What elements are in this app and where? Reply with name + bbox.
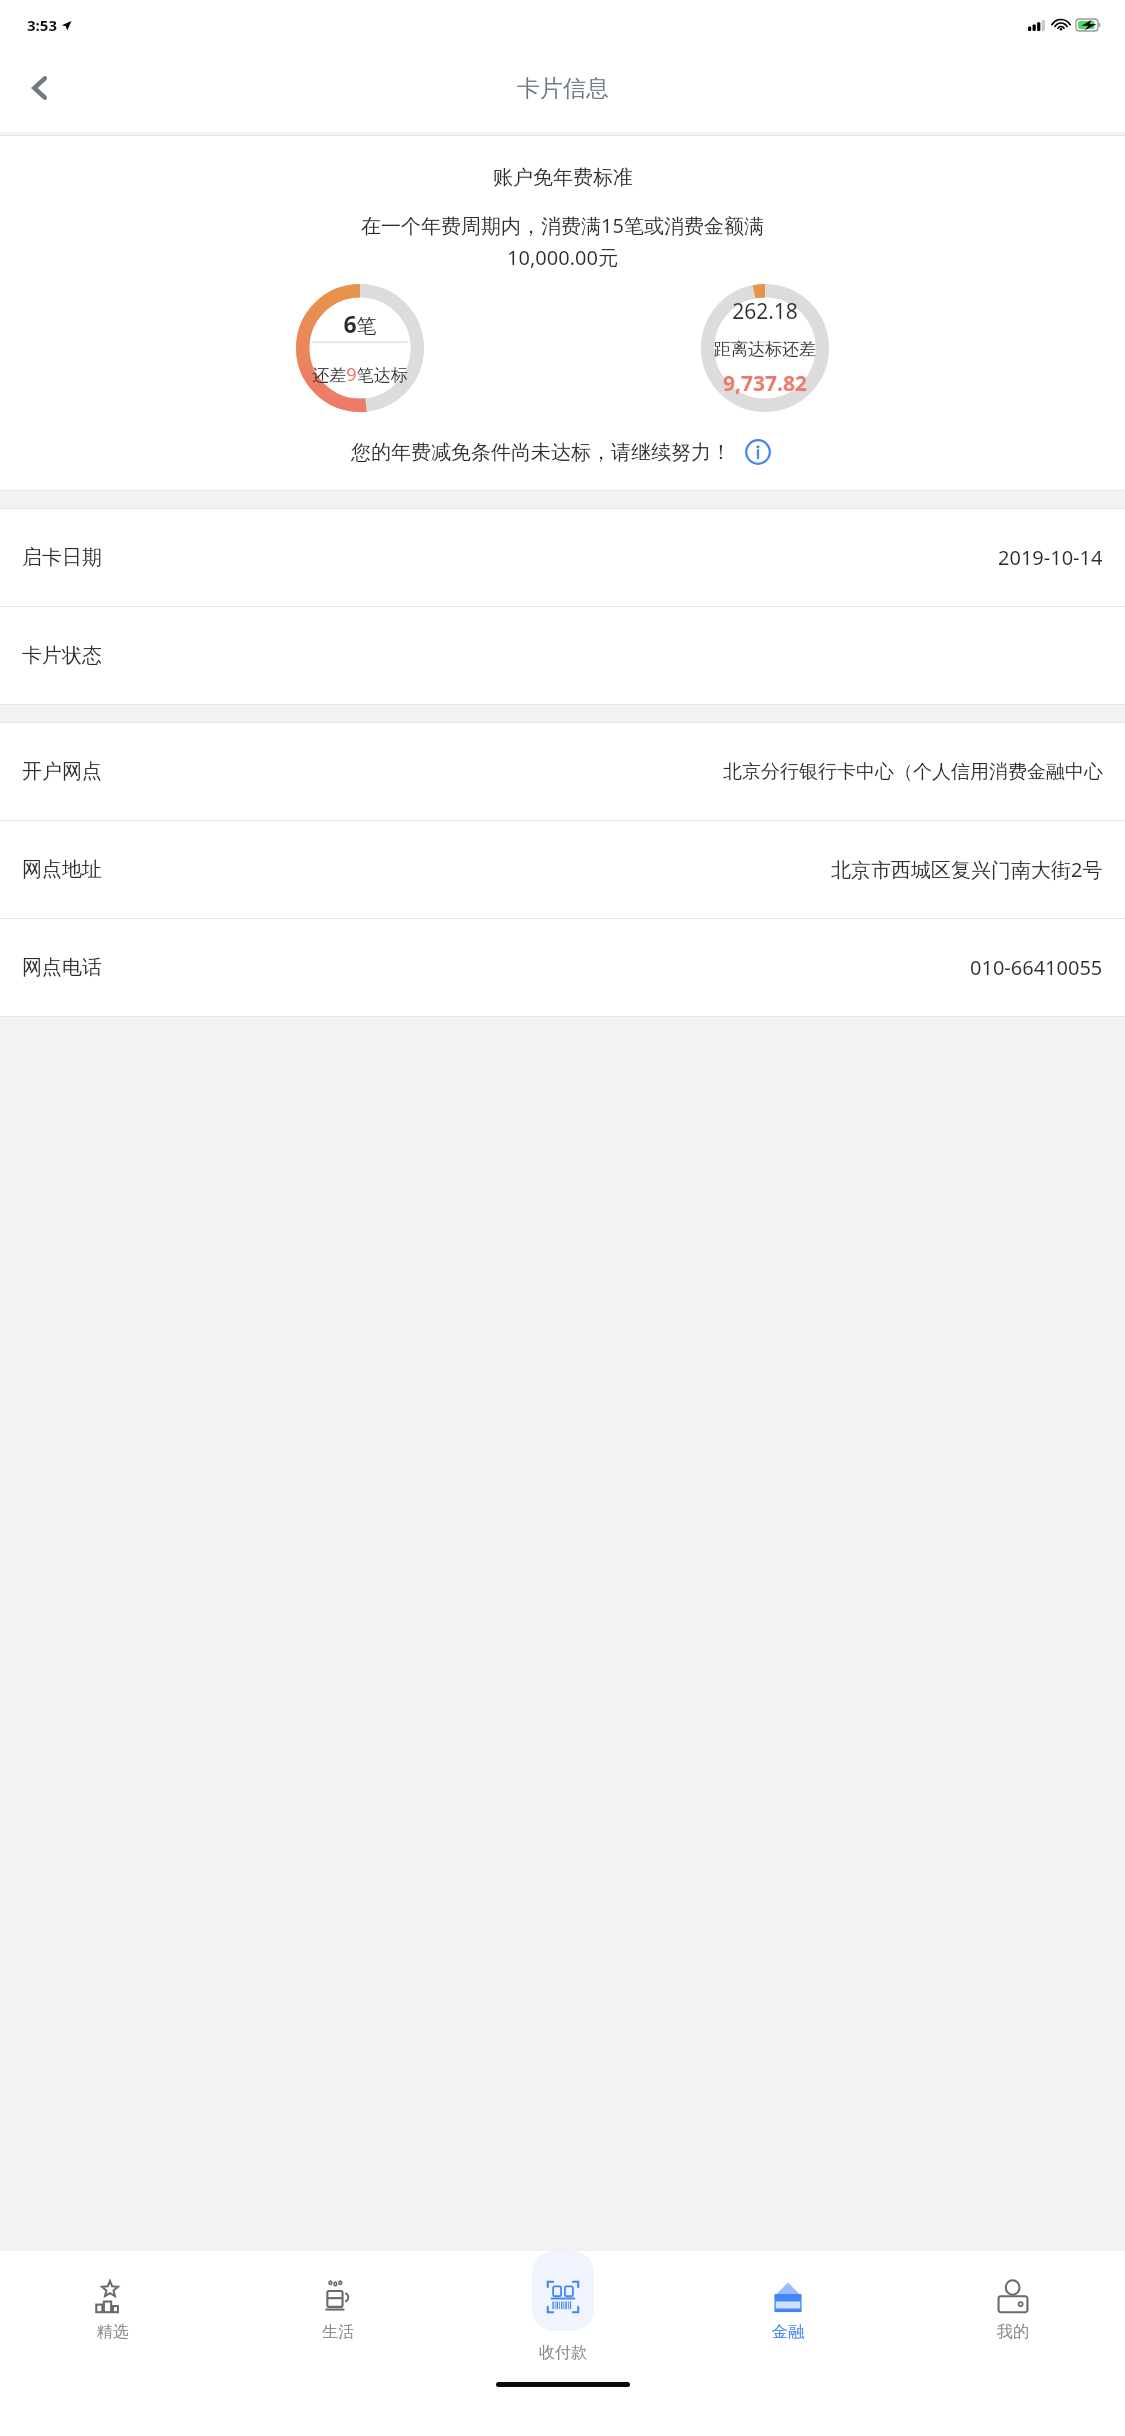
button[interactable]: Back — [8, 56, 72, 120]
staticText: 还差9笔达标 — [312, 362, 408, 387]
button[interactable]: 收付款 — [450, 2251, 675, 2368]
staticText: 网点地址 — [22, 857, 102, 882]
button[interactable]: 卡片状态 — [0, 607, 1125, 704]
staticText: 您的年费减免条件尚未达标，请继续努力！ — [351, 440, 731, 465]
button[interactable]: 金融 — [675, 2251, 900, 2368]
staticText: 3:53 — [27, 15, 57, 35]
staticText: 账户免年费标准 — [493, 165, 633, 190]
staticText: 6笔 — [343, 308, 377, 339]
staticText: 距离达标还差 — [714, 339, 816, 360]
staticText: 010-66410055 — [970, 954, 1103, 981]
staticText: 在一个年费周期内，消费满15笔或消费金额满 10,000.00元 — [361, 212, 764, 270]
button[interactable]: 开户网点 — [0, 723, 1125, 820]
staticText: 精选 — [97, 2322, 129, 2342]
staticText: 北京市西城区复兴门南大街2号 — [831, 856, 1103, 883]
staticText: 我的 — [997, 2322, 1029, 2342]
staticText: 生活 — [322, 2322, 354, 2342]
staticText: 收付款 — [539, 2343, 587, 2363]
button[interactable]: Info — [742, 436, 774, 468]
button[interactable]: 我的 — [900, 2251, 1125, 2368]
staticText: 网点电话 — [22, 955, 102, 980]
staticText: 9,737.82 — [723, 369, 807, 398]
staticText: 卡片状态 — [22, 643, 102, 668]
button[interactable]: 启卡日期 — [0, 509, 1125, 606]
staticText: 启卡日期 — [22, 545, 102, 570]
button[interactable]: 生活 — [225, 2251, 450, 2368]
button[interactable]: 网点电话 — [0, 919, 1125, 1016]
staticText: 开户网点 — [22, 759, 102, 784]
staticText: 2019-10-14 — [998, 544, 1103, 571]
staticText: 卡片信息 — [517, 74, 609, 103]
staticText: 262.18 — [732, 297, 798, 326]
staticText: 北京分行银行卡中心（个人信用消费金融中心 — [723, 760, 1103, 784]
staticText: 金融 — [772, 2322, 804, 2342]
button[interactable]: 精选 — [0, 2251, 225, 2368]
button[interactable]: 网点地址 — [0, 821, 1125, 918]
